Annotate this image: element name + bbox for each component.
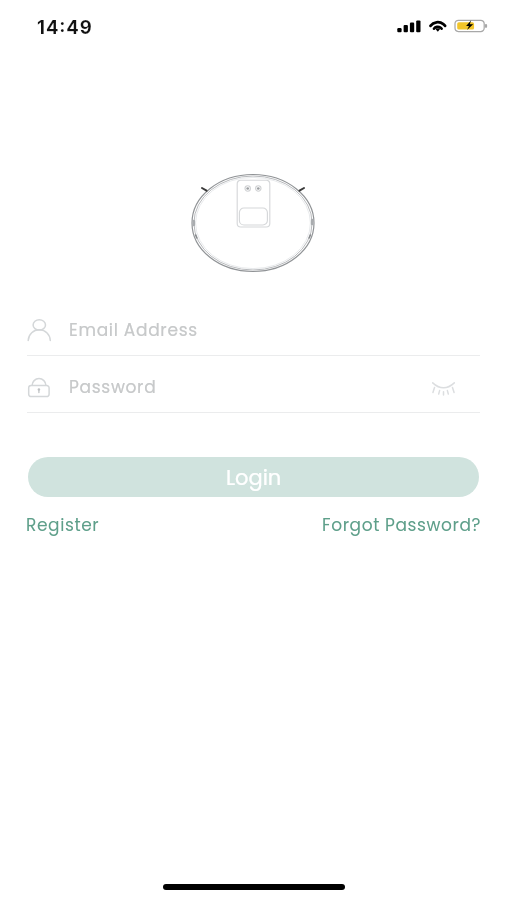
staticText: Forgot Password? <box>322 513 482 537</box>
button[interactable]: Show password <box>426 370 460 404</box>
button[interactable] <box>27 363 480 409</box>
button[interactable]: Register <box>26 513 100 537</box>
staticText: Password <box>69 375 157 399</box>
staticText: Register <box>26 513 100 537</box>
staticText: 14:49 <box>37 16 93 38</box>
button[interactable]: Login <box>28 457 479 497</box>
staticText: Email Address <box>69 318 198 342</box>
button[interactable]: Forgot Password? <box>322 513 482 537</box>
button[interactable] <box>27 305 480 351</box>
staticText: Login <box>226 463 282 492</box>
